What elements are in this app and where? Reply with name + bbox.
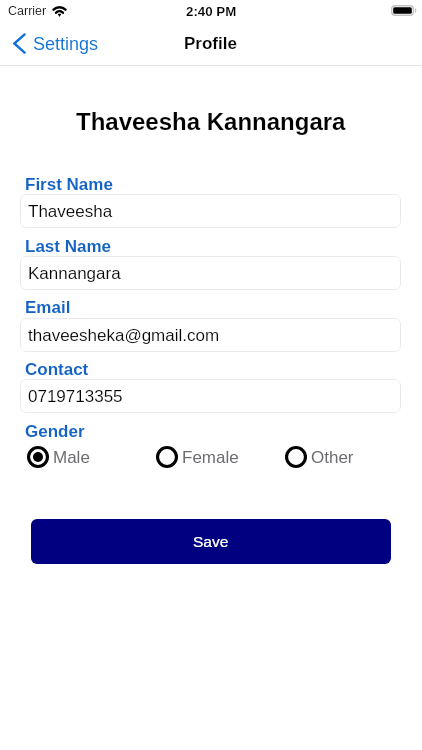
button[interactable]: Save bbox=[31, 519, 391, 564]
button[interactable]: thaveesheka@gmail.com bbox=[20, 318, 401, 352]
staticText: Contact bbox=[25, 360, 89, 379]
button[interactable]: Back to Settings bbox=[13, 33, 99, 54]
button[interactable]: 0719713355 bbox=[20, 379, 401, 413]
staticText: 2:40 PM bbox=[186, 4, 237, 19]
staticText: Kannangara bbox=[28, 264, 121, 283]
staticText: Settings bbox=[33, 34, 99, 54]
staticText: First Name bbox=[25, 175, 113, 194]
button[interactable]: Male bbox=[27, 446, 90, 468]
staticText: Carrier bbox=[8, 4, 47, 18]
staticText: Email bbox=[25, 298, 71, 317]
button[interactable]: Female bbox=[156, 446, 239, 468]
staticText: Thaveesha bbox=[28, 202, 113, 221]
staticText: 0719713355 bbox=[28, 387, 123, 406]
staticText: Save bbox=[193, 533, 229, 550]
staticText: Other bbox=[311, 448, 354, 467]
staticText: Female bbox=[182, 448, 239, 467]
staticText: Gender bbox=[25, 422, 85, 441]
staticText: Thaveesha Kannangara bbox=[76, 108, 346, 135]
button[interactable]: Thaveesha bbox=[20, 194, 401, 228]
staticText: Male bbox=[53, 448, 90, 467]
button[interactable]: Other bbox=[285, 446, 354, 468]
staticText: thaveesheka@gmail.com bbox=[28, 326, 220, 345]
staticText: Profile bbox=[184, 34, 237, 53]
staticText: Last Name bbox=[25, 237, 111, 256]
button[interactable]: Kannangara bbox=[20, 256, 401, 290]
